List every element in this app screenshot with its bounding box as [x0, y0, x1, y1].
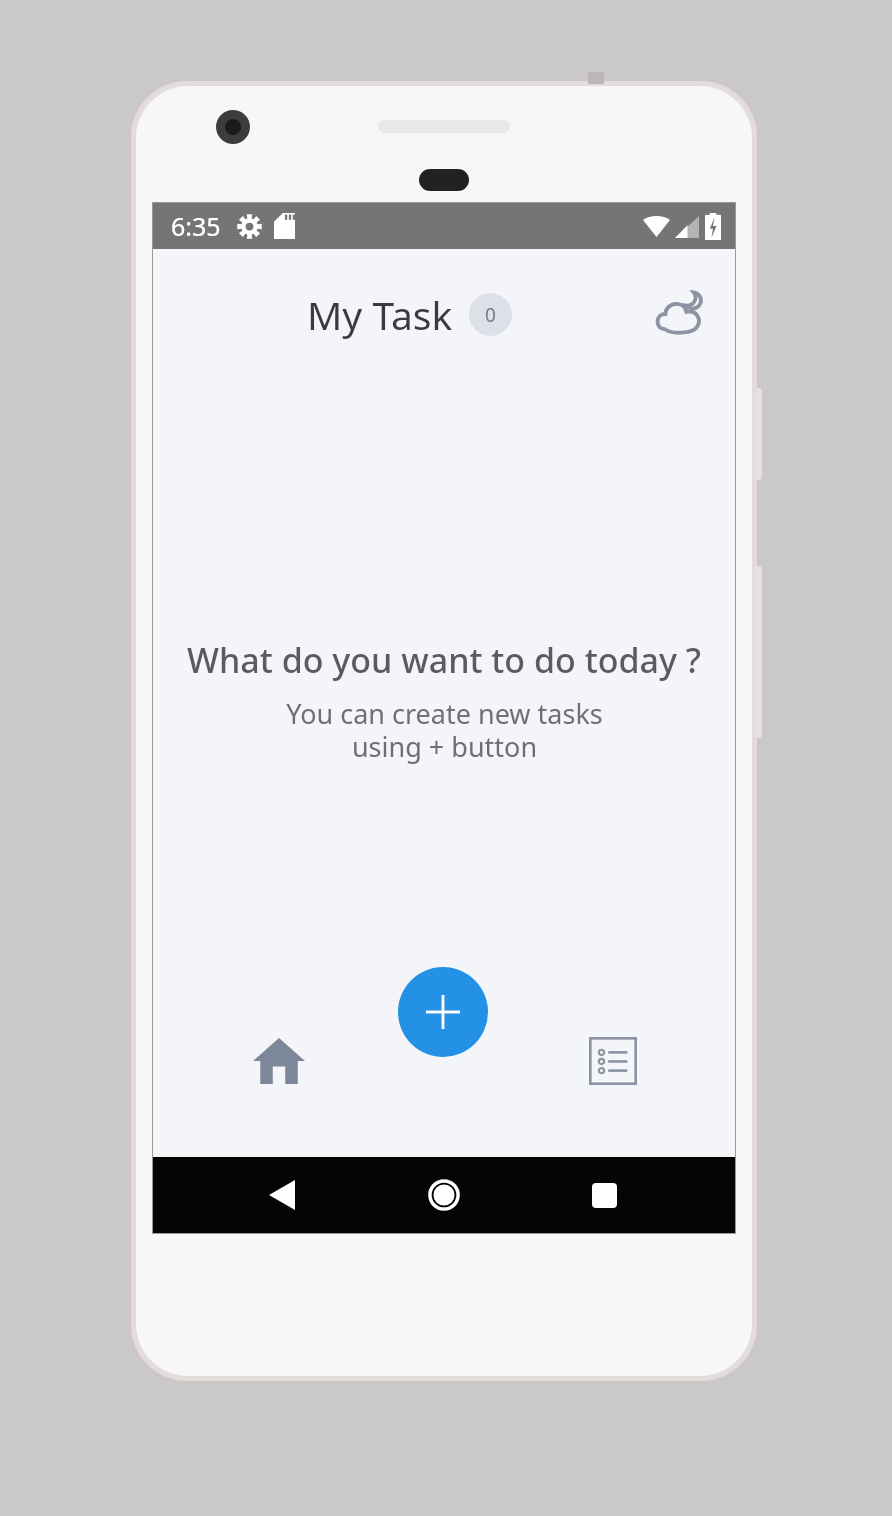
button[interactable]: Recent apps	[575, 1166, 633, 1224]
button[interactable]: Night mode	[649, 282, 713, 346]
button[interactable]: Home	[415, 1166, 473, 1224]
staticText: 6:35	[171, 209, 221, 243]
button[interactable]: 0	[469, 293, 512, 336]
staticText: 0	[485, 302, 496, 328]
button[interactable]: Task list	[575, 1023, 651, 1099]
button[interactable]: Back	[253, 1166, 311, 1224]
button[interactable]: Add task	[398, 967, 488, 1057]
staticText: You can create new tasks using + button	[286, 695, 603, 765]
button[interactable]: Home	[241, 1023, 317, 1099]
staticText: What do you want to do today ?	[187, 637, 701, 683]
staticText: My Task	[307, 288, 453, 341]
